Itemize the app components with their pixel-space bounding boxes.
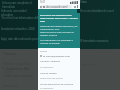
staticText: Datos bbox=[80, 0, 88, 4]
staticText: Asociacion educativa - 2024 bbox=[1, 27, 35, 31]
staticText: Estimada comunidad educativa, "Es util e… bbox=[1, 9, 39, 19]
button[interactable]: Back bbox=[39, 5, 42, 8]
staticText: Area de trabajo bbox=[40, 72, 57, 75]
staticText: Enlace para completar el formulario bbox=[2, 1, 40, 9]
staticText: Correo bbox=[40, 50, 48, 53]
staticText: El formulario necesario bbox=[80, 39, 109, 43]
staticText: Estimada comunidad educativa, les compar… bbox=[40, 25, 78, 37]
button[interactable]: More options bbox=[76, 5, 79, 8]
button[interactable]: Account bbox=[73, 5, 76, 8]
staticText: Ya es una iniciativa de uso d bbox=[80, 9, 114, 13]
staticText: 9:41 bbox=[40, 0, 46, 4]
staticText: 1. Cuadernos Mo bbox=[2, 66, 30, 71]
staticText: tu.correo@ejemplo.com bbox=[43, 54, 70, 57]
staticText: Tu respuesta bbox=[40, 66, 54, 69]
staticText: Correo electronico de contacto bbox=[40, 83, 74, 86]
staticText: ENCUESTA DE SATISFACCION ASOCIACION EDUC… bbox=[40, 14, 78, 23]
staticText: Sus respuestas nos ayudaran a mejorar el… bbox=[40, 39, 78, 45]
staticText: Nombre y apellido bbox=[40, 60, 60, 63]
staticText: Aqui, este sitio adecuado para bbox=[1, 37, 38, 41]
staticText: Selecciona una opcion bbox=[40, 77, 63, 80]
staticText: Tu respuesta bbox=[40, 87, 54, 90]
staticText: docs.google.com/forms bbox=[46, 5, 72, 8]
button[interactable]: docs.google.com/forms bbox=[42, 5, 72, 8]
